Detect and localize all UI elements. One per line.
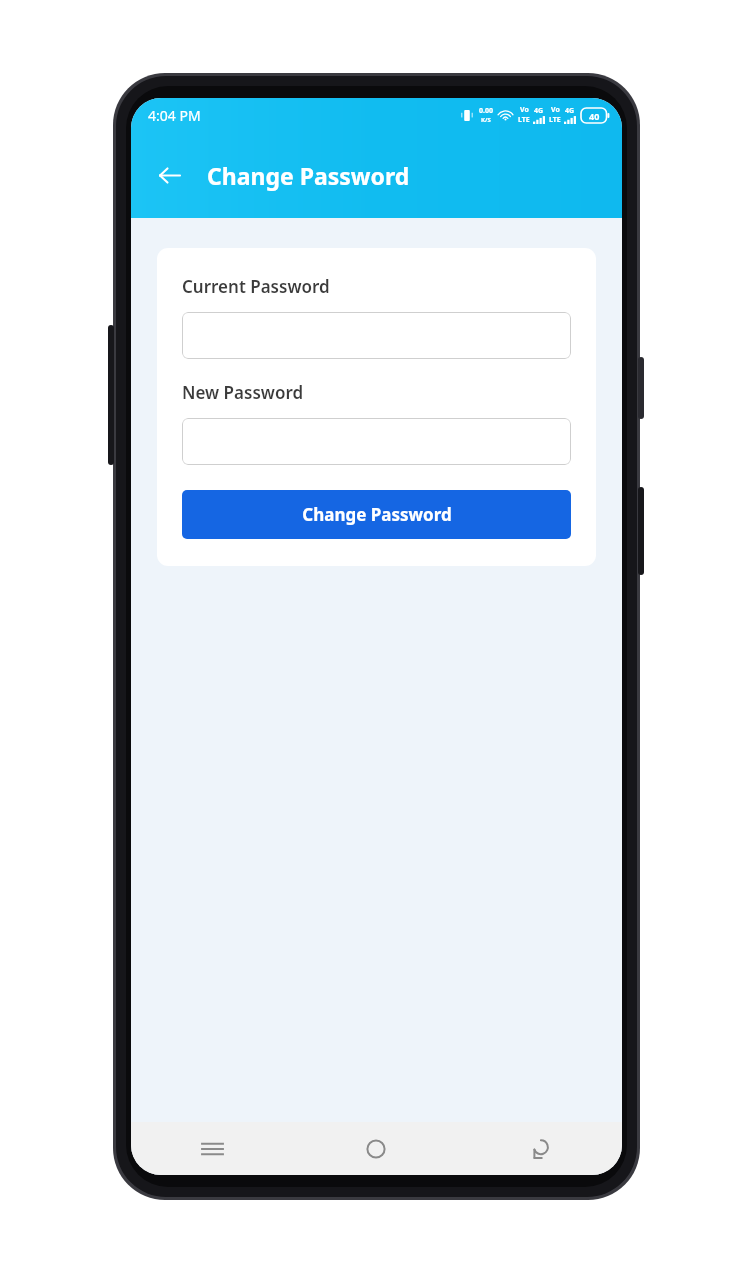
staticText: LTE xyxy=(549,115,561,125)
staticText: 4G xyxy=(565,106,575,116)
staticText: 0.00 xyxy=(479,106,493,116)
staticText: Vo xyxy=(520,105,529,115)
button[interactable]: Back xyxy=(458,1122,622,1175)
staticText: 4:04 PM xyxy=(148,106,201,125)
staticText: Current Password xyxy=(182,275,330,298)
staticText: Change Password xyxy=(207,160,410,191)
staticText: 4G xyxy=(534,106,544,116)
staticText: New Password xyxy=(182,381,304,404)
button[interactable]: Password input field xyxy=(182,418,571,465)
staticText: K/S xyxy=(481,116,491,124)
staticText: Change Password xyxy=(302,503,452,526)
button[interactable]: Home xyxy=(294,1122,458,1175)
button[interactable]: Change Password xyxy=(182,490,571,539)
staticText: 40 xyxy=(589,110,600,122)
staticText: Vo xyxy=(551,105,560,115)
staticText: LTE xyxy=(518,115,530,125)
button[interactable]: Back xyxy=(145,151,193,199)
button[interactable]: Password input field xyxy=(182,312,571,359)
button[interactable]: Recent apps xyxy=(131,1122,294,1175)
